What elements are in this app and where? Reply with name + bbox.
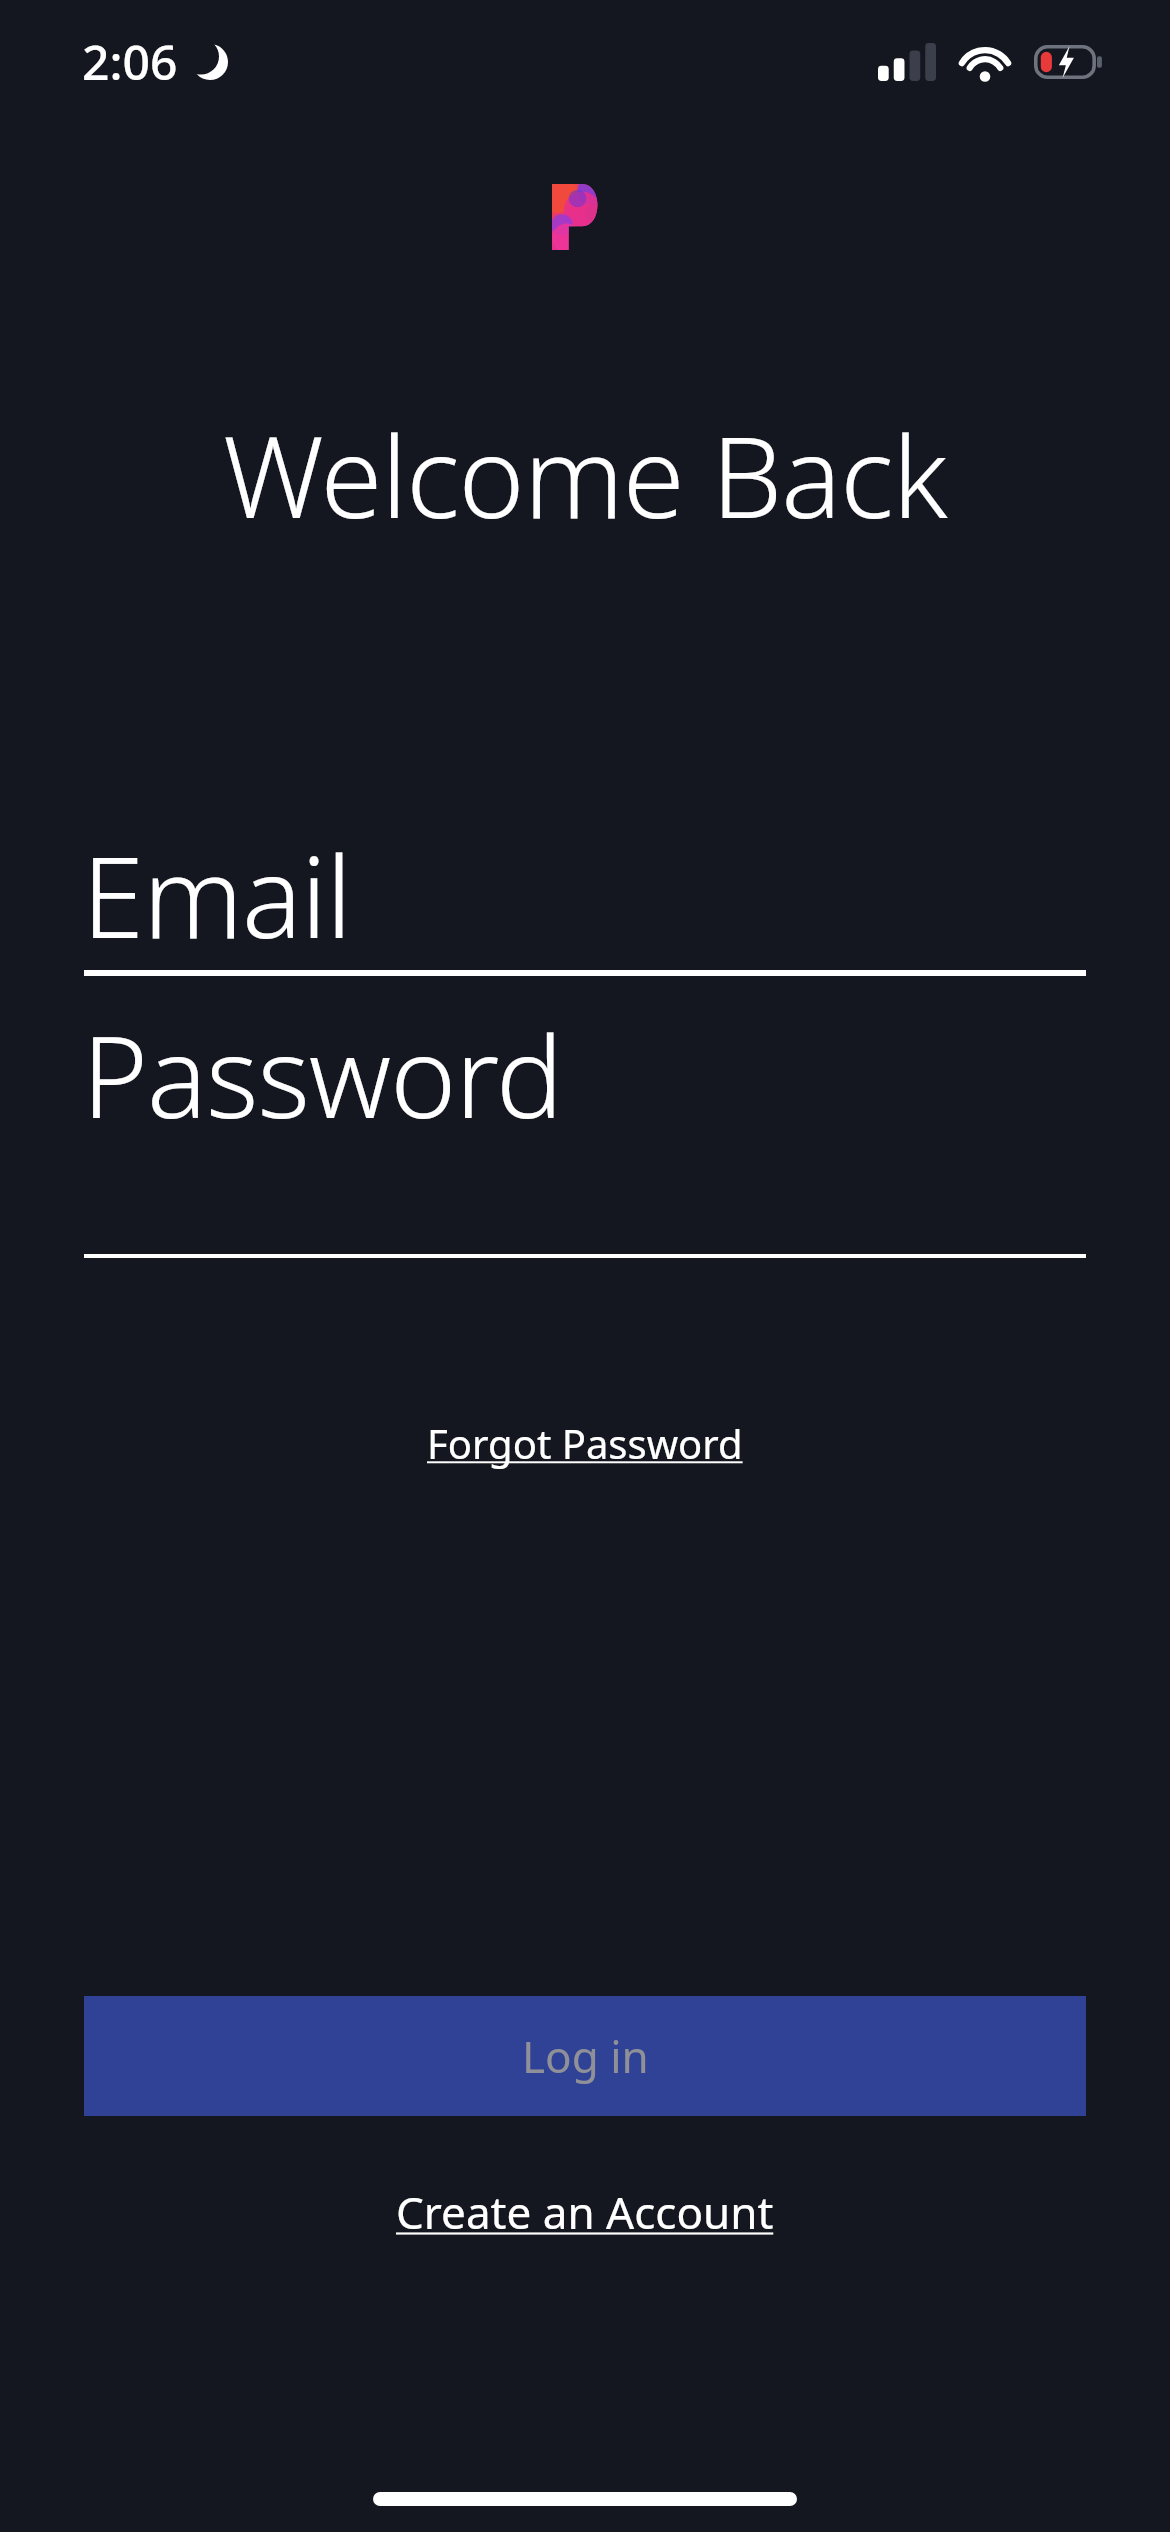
staticText: Create an Account <box>396 2182 774 2242</box>
staticText: Email <box>82 818 351 958</box>
staticText: 2:06 <box>82 29 178 94</box>
other: Pandora logo <box>552 184 601 250</box>
other: Wi-Fi <box>958 42 1012 81</box>
staticText: Welcome Back <box>223 398 947 551</box>
button[interactable]: Password <box>84 1016 1086 1258</box>
other: Battery charging <box>1034 45 1104 79</box>
button[interactable]: Email <box>84 836 1086 976</box>
other: Cellular signal <box>878 43 936 81</box>
other: Do Not Disturb <box>192 44 228 80</box>
button[interactable]: Forgot Password <box>417 1410 753 1476</box>
button[interactable]: Create an Account <box>386 2176 784 2248</box>
staticText: Forgot Password <box>427 1416 743 1470</box>
button[interactable]: Log in <box>84 1996 1086 2116</box>
staticText: Password <box>82 998 563 1151</box>
staticText: Log in <box>522 2026 649 2086</box>
